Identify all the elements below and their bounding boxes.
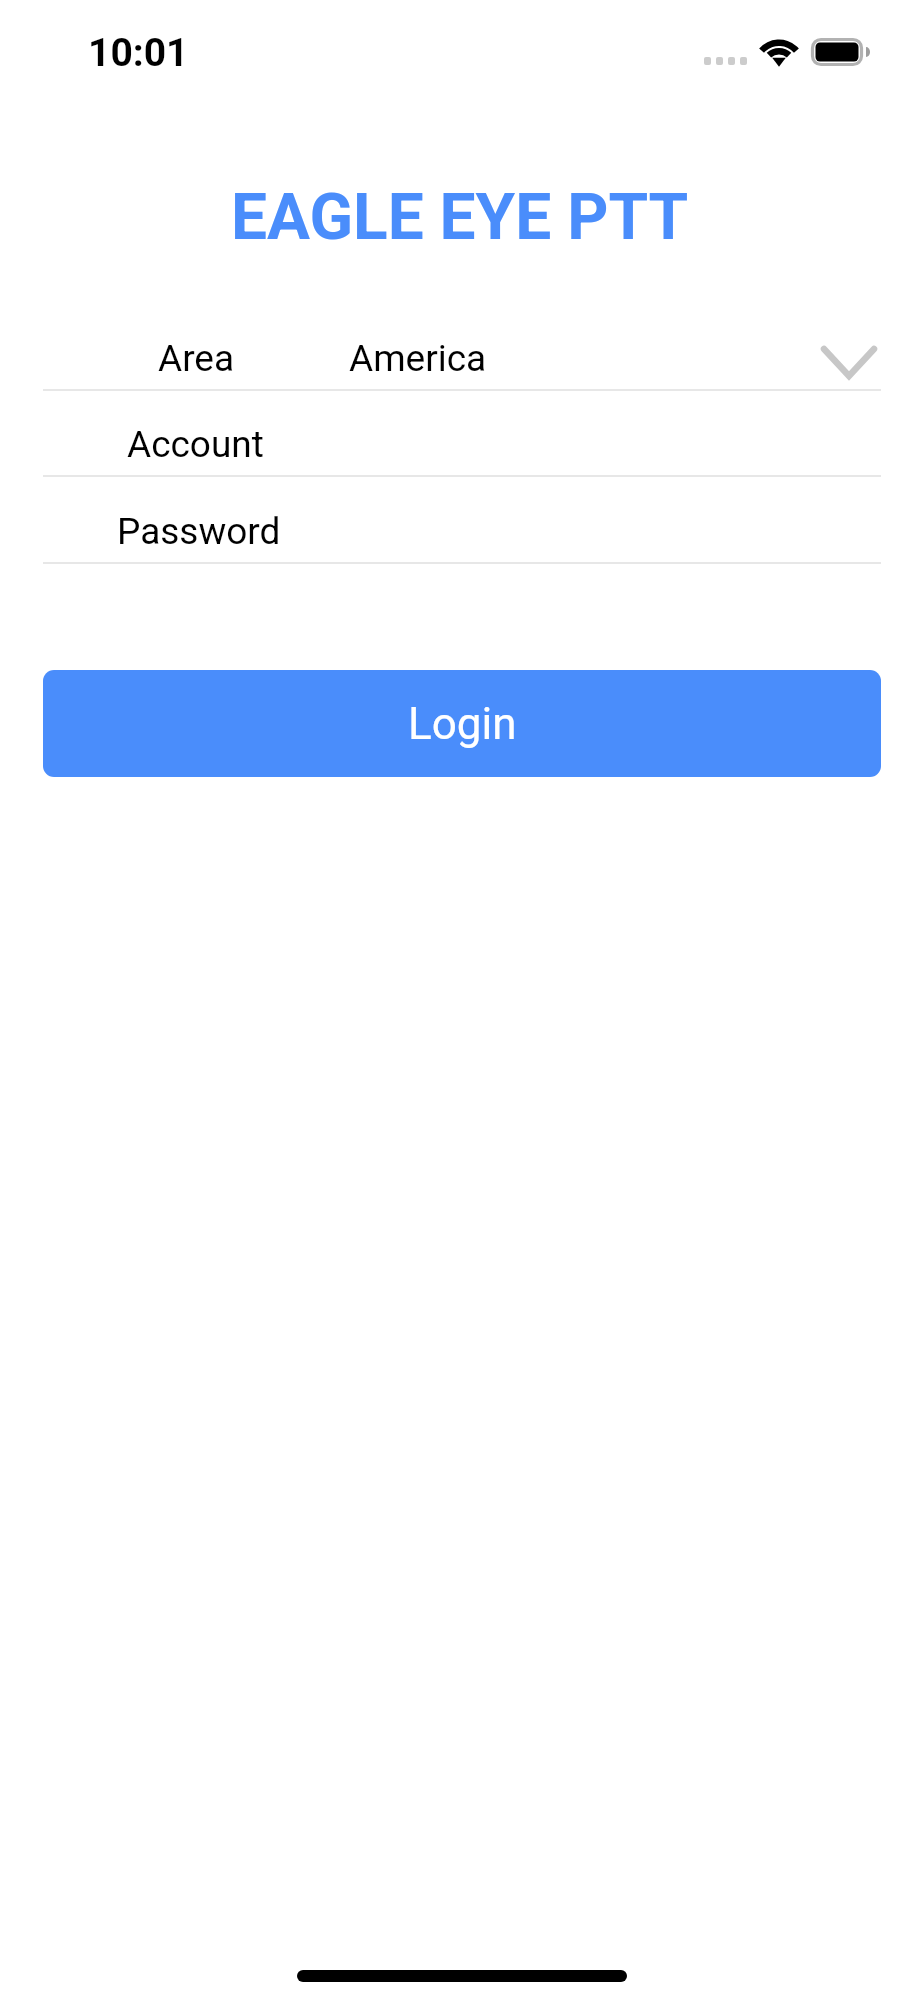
button[interactable]: Password [0, 477, 924, 562]
staticText: Login [408, 698, 517, 750]
staticText: America [349, 337, 487, 380]
other: Battery full [810, 37, 872, 69]
staticText: Password [117, 510, 281, 553]
button[interactable]: Area [0, 322, 924, 389]
other: Wi-Fi [760, 20, 800, 70]
button[interactable]: Login [43, 670, 881, 777]
staticText: Account [127, 423, 264, 466]
other: Cellular signal [704, 57, 747, 65]
button[interactable]: Account [0, 391, 924, 475]
staticText: EAGLE EYE PTT [231, 180, 689, 255]
staticText: Area [158, 337, 235, 380]
staticText: 10:01 [88, 30, 189, 76]
button[interactable]: Show area list [796, 322, 882, 389]
